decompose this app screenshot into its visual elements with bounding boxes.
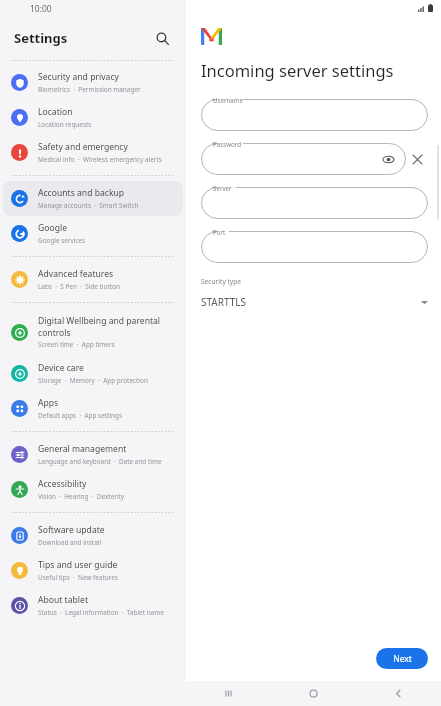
button[interactable]: Apps [3,391,183,426]
button[interactable]: Google [3,216,183,251]
button[interactable]: Accessibility [3,472,183,507]
button[interactable]: Password [201,143,406,175]
staticText: Device care [38,362,84,374]
staticText: 10:00 [30,3,52,15]
staticText: Advanced features [38,268,114,280]
button[interactable]: Security and privacy [3,65,183,100]
staticText: Incoming server settings [201,59,394,81]
button[interactable]: Device care [3,356,183,391]
staticText: Screen time · App timers [38,340,115,349]
button[interactable]: Home [271,681,356,706]
staticText: Useful tips · New features [38,573,118,582]
staticText: Default apps · App settings [38,411,122,420]
staticText: Port [213,228,226,236]
staticText: Location requests [38,120,92,129]
staticText: Google services [38,236,86,245]
staticText: Tips and user guide [38,559,118,571]
button[interactable]: Accounts and backup [3,181,183,216]
staticText: Vision · Hearing · Dexterity [38,492,125,501]
staticText: About tablet [38,594,88,606]
button[interactable]: Safety and emergency [3,135,183,170]
staticText: Labs · S Pen · Side button [38,282,120,291]
button[interactable]: Software update [3,518,183,553]
staticText: Digital Wellbeing and parental controls [38,315,161,338]
staticText: Status · Legal information · Tablet name [38,608,164,617]
button[interactable]: Username [201,99,428,131]
button[interactable]: Location [3,100,183,135]
button[interactable]: Port [201,231,428,263]
button[interactable]: Server [201,187,428,219]
staticText: Location [38,106,73,118]
staticText: Settings [14,29,68,47]
staticText: Biometrics · Permission manager [38,85,141,94]
staticText: Google [38,222,68,234]
staticText: Password [213,140,241,148]
staticText: Storage · Memory · App protection [38,376,148,385]
button[interactable]: Back [356,681,441,706]
button[interactable]: About tablet [3,588,183,623]
staticText: Next [393,653,412,665]
button[interactable]: Next [376,648,428,669]
staticText: Download and install [38,538,102,547]
staticText: Software update [38,524,105,536]
staticText: Safety and emergency [38,141,128,153]
button[interactable]: General management [3,437,183,472]
staticText: Server [213,184,232,192]
button[interactable]: Tips and user guide [3,553,183,588]
staticText: Security type [201,277,241,286]
button[interactable]: Digital Wellbeing and parental controls [3,308,183,356]
staticText: Accounts and backup [38,187,125,199]
button[interactable]: Show password [380,151,396,167]
staticText: General management [38,443,127,455]
staticText: Apps [38,397,59,409]
staticText: Manage accounts · Smart Switch [38,201,139,210]
staticText: STARTTLS [201,295,247,309]
button[interactable]: Recent apps [186,681,271,706]
button[interactable]: Search [150,26,174,50]
button[interactable]: Clear [406,148,428,170]
staticText: Medical info · Wireless emergency alerts [38,155,162,164]
button[interactable]: STARTTLS [201,293,428,311]
staticText: Security and privacy [38,71,119,83]
staticText: Language and keyboard · Date and time [38,457,162,466]
button[interactable]: Advanced features [3,262,183,297]
staticText: Accessibility [38,478,87,490]
staticText: Username [213,96,244,104]
